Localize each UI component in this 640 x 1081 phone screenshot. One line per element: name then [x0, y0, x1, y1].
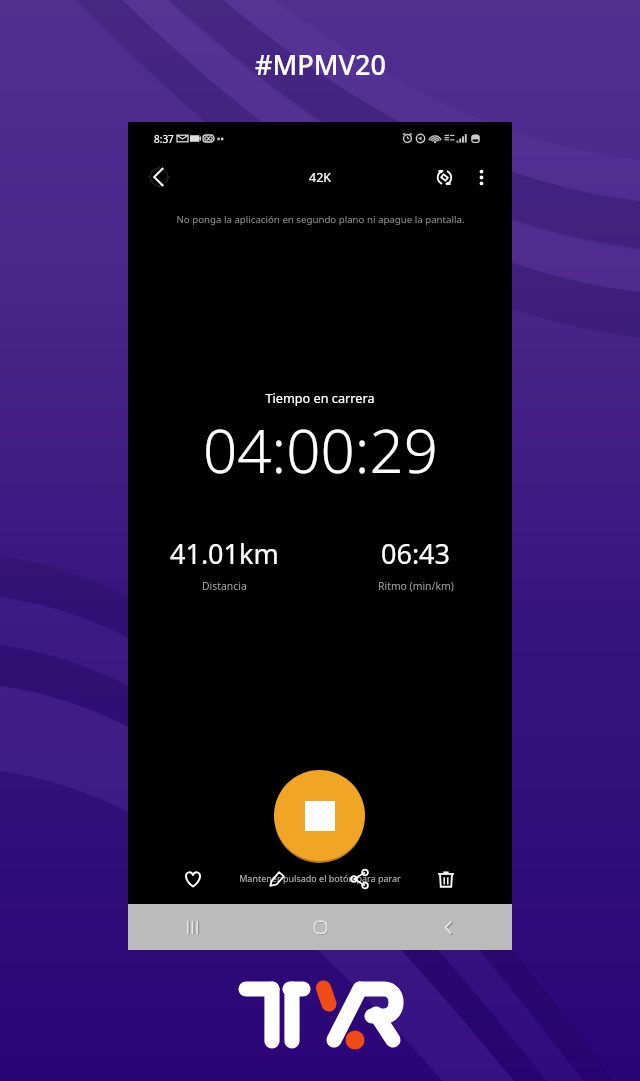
- staticText: #MPMV20: [255, 46, 386, 83]
- button[interactable]: Parar: [274, 770, 365, 861]
- staticText: 41.01km: [170, 535, 279, 572]
- staticText: 06:43: [381, 535, 451, 572]
- button[interactable]: Me gusta: [177, 863, 209, 895]
- staticText: Ritmo (min/km): [378, 579, 454, 593]
- button[interactable]: Atrás: [141, 159, 177, 195]
- staticText: Distancia: [202, 579, 247, 593]
- button[interactable]: Atrás: [384, 904, 512, 950]
- staticText: No ponga la aplicación en segundo plano …: [176, 213, 465, 226]
- button[interactable]: Recientes: [128, 904, 256, 950]
- button[interactable]: Inicio: [256, 904, 384, 950]
- staticText: Tiempo en carrera: [265, 389, 375, 406]
- staticText: 8:37: [154, 132, 174, 145]
- staticText: Mantener pulsado el botón para parar: [128, 872, 512, 884]
- button[interactable]: Eliminar: [430, 863, 462, 895]
- button[interactable]: Rotar pantalla: [426, 159, 462, 195]
- button[interactable]: Editar: [261, 863, 293, 895]
- button[interactable]: Compartir: [344, 863, 376, 895]
- button[interactable]: Más opciones: [463, 159, 499, 195]
- staticText: 04:00:29: [203, 409, 438, 479]
- staticText: 42K: [309, 169, 332, 186]
